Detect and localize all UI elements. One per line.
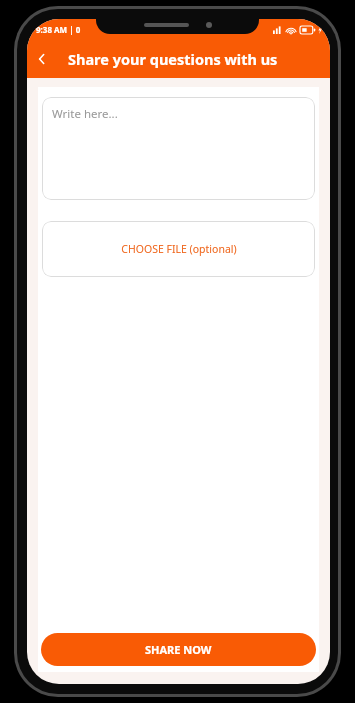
- button[interactable]: SHARE NOW: [41, 633, 316, 666]
- button[interactable]: Write here...: [42, 97, 315, 200]
- button[interactable]: Back: [27, 44, 57, 74]
- staticText: Share your questions with us: [68, 49, 278, 69]
- button[interactable]: CHOOSE FILE (optional): [42, 221, 315, 277]
- staticText: CHOOSE FILE (optional): [121, 242, 237, 256]
- staticText: SHARE NOW: [145, 642, 212, 657]
- staticText: Write here...: [52, 106, 118, 122]
- staticText: 9:38 AM | 0: [36, 24, 81, 35]
